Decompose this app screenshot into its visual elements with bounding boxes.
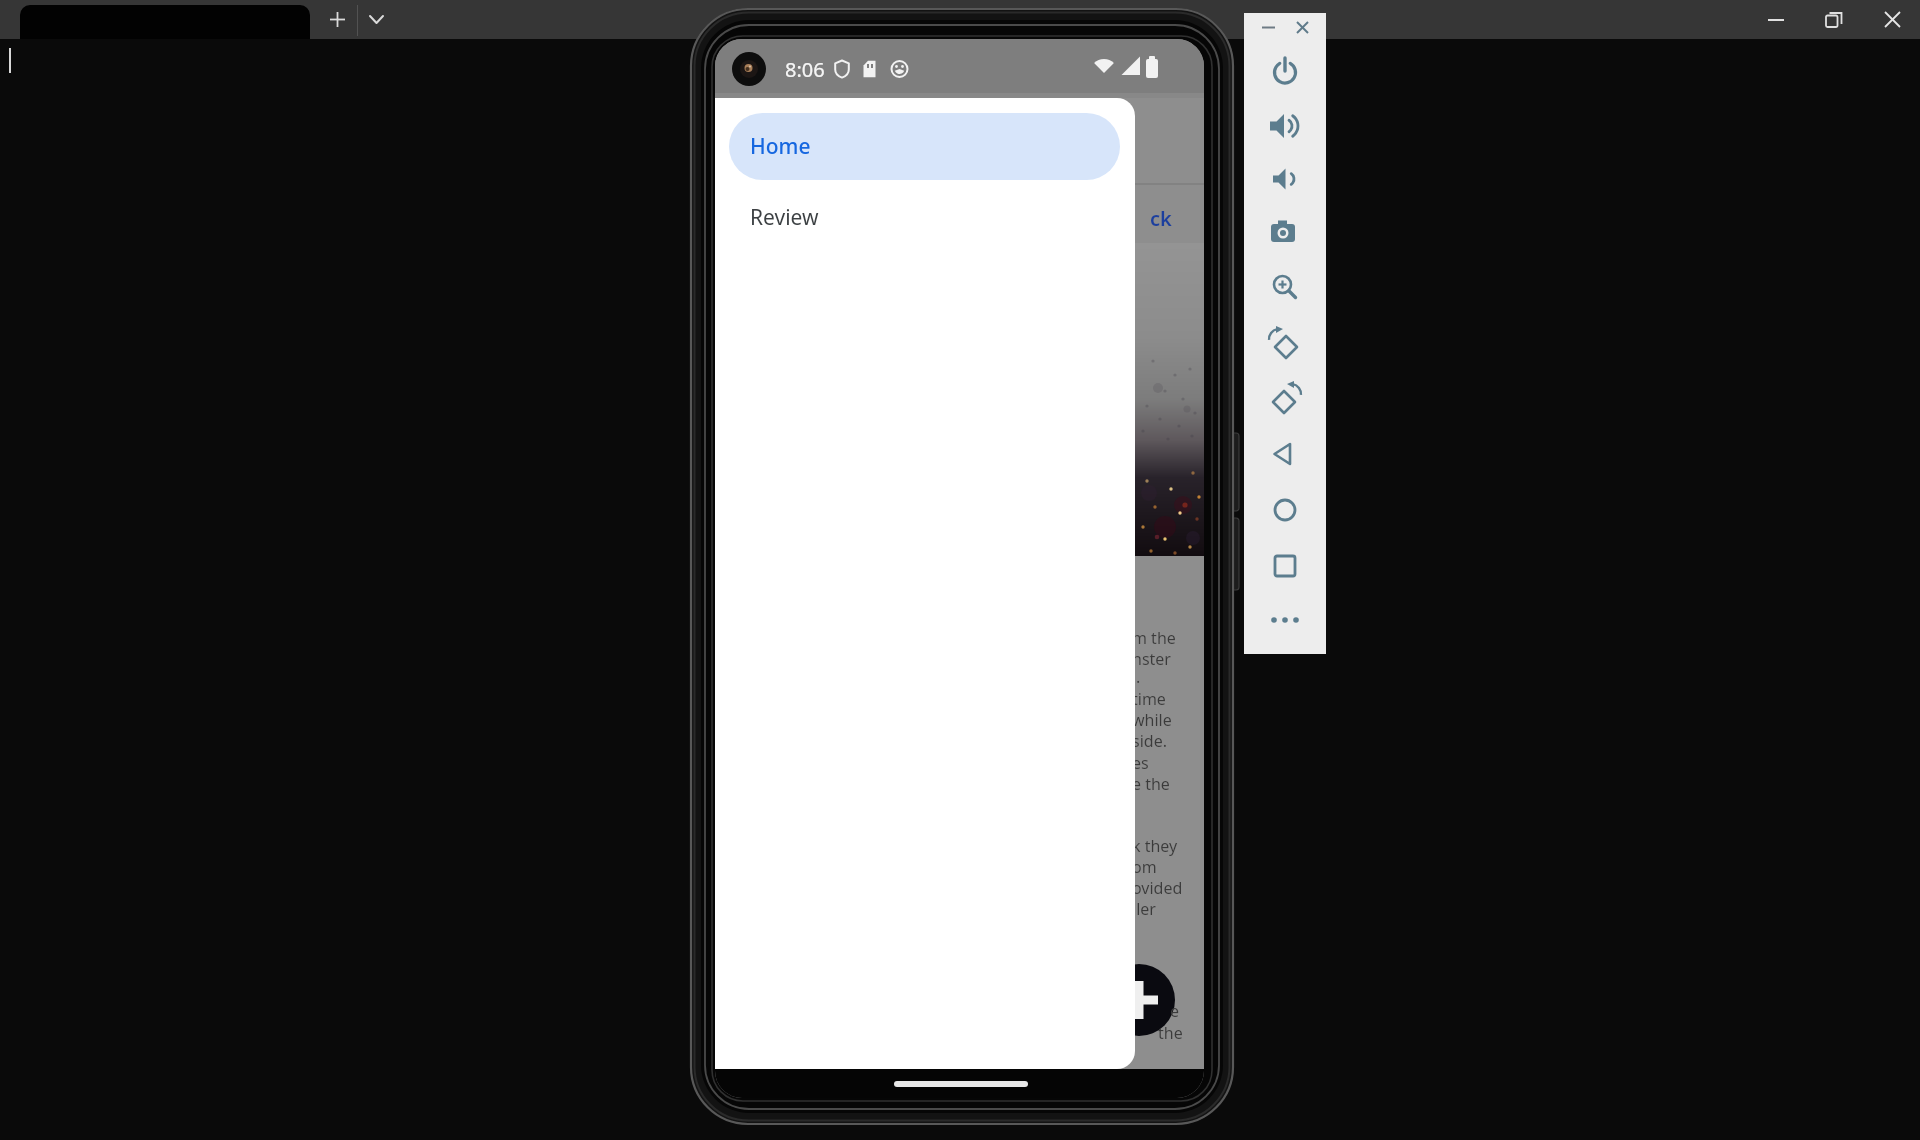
- staticText: om: [1132, 856, 1157, 878]
- staticText: ovided: [1132, 877, 1183, 899]
- button[interactable]: [1261, 46, 1309, 94]
- staticText: es: [1132, 752, 1149, 774]
- staticText: m the: [1132, 627, 1176, 649]
- button[interactable]: [1261, 375, 1309, 423]
- staticText: nster: [1132, 648, 1171, 670]
- staticText: ller: [1132, 898, 1156, 920]
- button[interactable]: [1290, 15, 1314, 39]
- staticText: the: [1158, 1022, 1183, 1044]
- button[interactable]: Review: [729, 190, 1120, 244]
- button[interactable]: [1261, 208, 1309, 256]
- button[interactable]: [1261, 596, 1309, 644]
- staticText: time: [1132, 688, 1166, 710]
- button[interactable]: [1756, 3, 1796, 35]
- button[interactable]: [1261, 155, 1309, 203]
- button[interactable]: [1814, 3, 1854, 35]
- staticText: e the: [1132, 773, 1170, 795]
- staticText: Review: [750, 203, 819, 232]
- staticText: 8:06: [785, 56, 825, 83]
- staticText: Home: [750, 132, 811, 161]
- staticText: e: [1170, 1000, 1180, 1022]
- staticText: ck: [1150, 205, 1172, 231]
- button[interactable]: [1871, 3, 1913, 35]
- button[interactable]: [1261, 542, 1309, 590]
- staticText: .: [1136, 666, 1141, 688]
- button[interactable]: [1261, 320, 1309, 368]
- staticText: side.: [1132, 730, 1167, 752]
- button[interactable]: [361, 5, 391, 34]
- button[interactable]: [1261, 486, 1309, 534]
- button[interactable]: [1256, 15, 1280, 39]
- button[interactable]: [1261, 263, 1309, 311]
- button[interactable]: [322, 5, 352, 34]
- button[interactable]: [1103, 964, 1175, 1036]
- button[interactable]: [1261, 102, 1309, 150]
- button[interactable]: [1261, 430, 1309, 478]
- button[interactable]: Home: [729, 113, 1120, 180]
- button[interactable]: [20, 5, 310, 39]
- staticText: while: [1132, 709, 1172, 731]
- staticText: k they: [1132, 835, 1178, 857]
